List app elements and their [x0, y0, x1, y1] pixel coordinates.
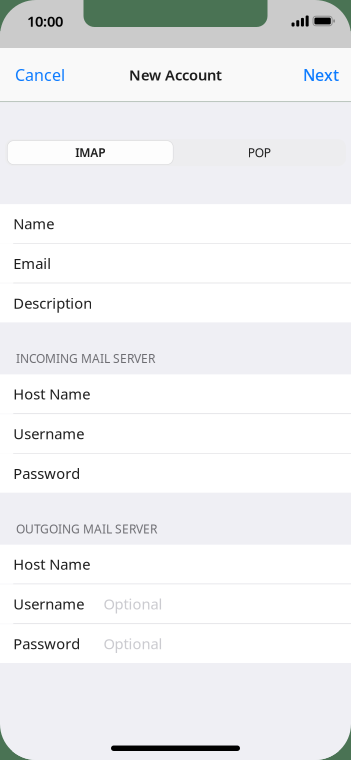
- button[interactable]: Host Name: [0, 374, 351, 413]
- staticText: Host Name: [13, 554, 90, 574]
- button[interactable]: Name: [0, 204, 351, 243]
- staticText: 10:00: [27, 11, 63, 31]
- button[interactable]: Password: [0, 454, 351, 493]
- staticText: Username: [13, 424, 84, 443]
- button[interactable]: Host Name: [0, 545, 351, 584]
- button[interactable]: Cancel: [0, 48, 77, 101]
- staticText: Password: [13, 634, 80, 653]
- staticText: Description: [13, 293, 92, 313]
- staticText: IMAP: [75, 145, 105, 160]
- staticText: Optional: [103, 634, 162, 653]
- button[interactable]: Description: [0, 283, 351, 322]
- button[interactable]: POP: [173, 141, 345, 165]
- button[interactable]: Next: [291, 48, 351, 101]
- staticText: Host Name: [13, 384, 90, 404]
- staticText: Next: [303, 64, 339, 85]
- staticText: New Account: [129, 65, 222, 84]
- button[interactable]: Username: [0, 414, 351, 453]
- staticText: POP: [248, 145, 271, 160]
- staticText: Password: [13, 463, 80, 483]
- staticText: INCOMING MAIL SERVER: [16, 350, 155, 366]
- staticText: Optional: [103, 594, 162, 614]
- button[interactable]: IMAP: [7, 141, 173, 165]
- staticText: OUTGOING MAIL SERVER: [16, 521, 157, 537]
- staticText: Cancel: [15, 64, 65, 85]
- staticText: Email: [13, 253, 51, 273]
- staticText: Username: [13, 594, 84, 614]
- button[interactable]: Password: [0, 624, 351, 663]
- staticText: Name: [13, 214, 54, 233]
- button[interactable]: Email: [0, 244, 351, 283]
- button[interactable]: Username: [0, 584, 351, 623]
